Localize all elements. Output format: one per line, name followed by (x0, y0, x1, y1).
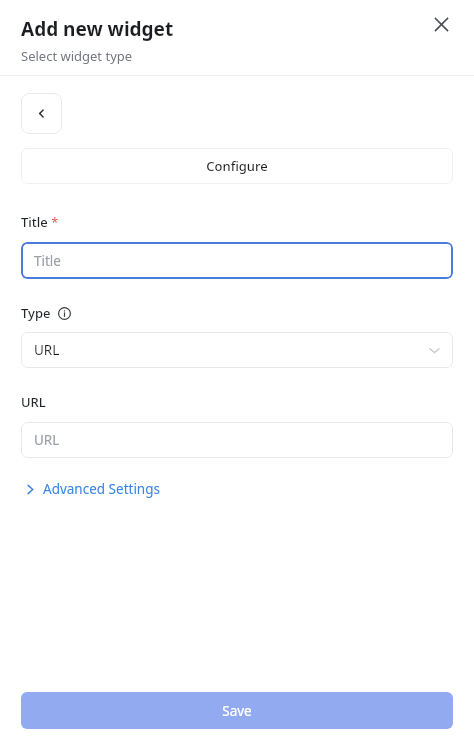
staticText: Title (34, 252, 61, 270)
staticText: URL (34, 431, 60, 449)
staticText: URL (21, 393, 46, 411)
button[interactable]: Back (21, 93, 62, 134)
button[interactable]: Close (425, 8, 457, 40)
staticText: Advanced Settings (43, 480, 160, 498)
staticText: Add new widget (21, 16, 174, 42)
button[interactable]: Save (21, 692, 453, 729)
staticText: Save (222, 702, 252, 720)
staticText: URL (34, 341, 60, 359)
button[interactable]: Advanced Settings (23, 476, 162, 502)
button[interactable]: URL (21, 422, 453, 458)
staticText: Configure (206, 157, 268, 175)
button[interactable]: Title (21, 242, 453, 279)
button[interactable]: URL (21, 332, 453, 368)
button[interactable]: Type information (56, 305, 72, 321)
staticText: Select widget type (21, 47, 133, 65)
staticText: Title * (21, 213, 59, 231)
button[interactable]: Configure (21, 148, 453, 184)
staticText: Type (21, 304, 51, 322)
